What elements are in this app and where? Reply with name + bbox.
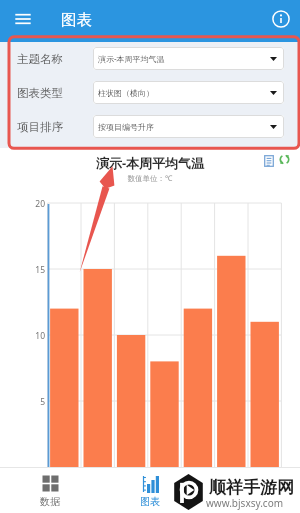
button[interactable]: Info [272, 10, 290, 28]
staticText: 图表 [140, 495, 160, 508]
button[interactable]: 按项目编号升序 [93, 115, 284, 138]
button[interactable]: 柱状图（横向） [93, 81, 284, 104]
staticText: 5 [0, 396, 45, 408]
staticText: 15 [0, 264, 45, 276]
staticText: 柱状图（横向） [98, 88, 270, 98]
staticText: 演示-本周平均气温 [98, 53, 270, 64]
staticText: 项目排序 [17, 120, 63, 134]
staticText: 演示-本周平均气温 [0, 154, 300, 172]
button[interactable]: 演示-本周平均气温 [93, 47, 284, 70]
button[interactable]: Data list [264, 155, 274, 167]
staticText: www.bjsxsy.com [206, 496, 284, 510]
staticText: 20 [0, 198, 45, 210]
button[interactable]: 数据 [0, 468, 100, 513]
staticText: 顺祥手游网 [209, 477, 294, 498]
staticText: 数值单位：℃ [0, 173, 300, 183]
button[interactable]: Menu [13, 9, 33, 29]
button[interactable]: Refresh [279, 154, 290, 165]
staticText: 10 [0, 330, 45, 342]
button[interactable]: 图表 [100, 468, 200, 513]
staticText: 图表 [61, 10, 92, 30]
staticText: 主题名称 [17, 52, 63, 66]
staticText: 按项目编号升序 [98, 122, 270, 132]
staticText: 数据 [40, 495, 60, 508]
staticText: 图表类型 [17, 86, 63, 100]
